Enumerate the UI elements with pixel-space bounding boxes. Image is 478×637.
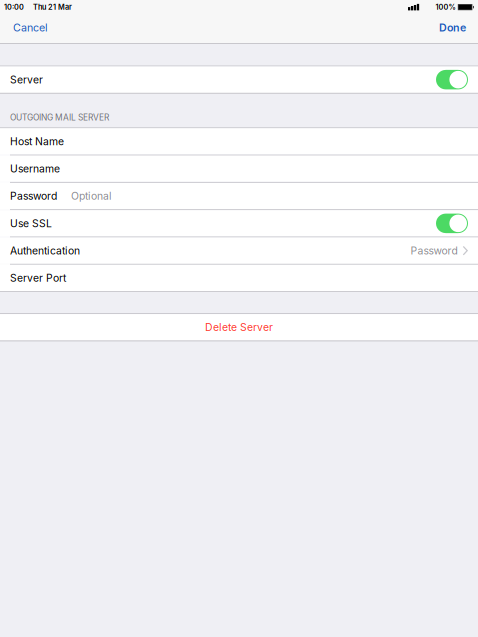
staticText: Server [10,73,43,86]
staticText: 100% [436,3,456,12]
staticText: OUTGOING MAIL SERVER [10,112,109,123]
staticText: Delete Server [205,321,273,334]
staticText: Password [410,244,457,257]
staticText: Password [10,190,57,202]
staticText: Host Name [10,135,64,148]
button[interactable]: Use SSL [0,210,478,236]
staticText: Done [439,21,466,34]
staticText: Cancel [13,21,48,34]
staticText: Authentication [10,244,80,257]
staticText: Server Port [10,272,66,284]
staticText: Use SSL [10,217,52,230]
button[interactable]: Delete Server [0,314,478,340]
staticText: 10:00 [4,3,24,12]
button[interactable]: Server Port [0,265,478,291]
button[interactable]: Server [0,66,478,93]
button[interactable]: Cancel [0,18,56,42]
staticText: Username [10,162,60,175]
staticText: Thu 21 Mar [33,3,72,12]
button[interactable]: Authentication [0,237,478,264]
button[interactable]: Host Name [0,128,478,155]
button[interactable]: Username [0,156,478,182]
staticText: Optional [71,190,112,202]
button[interactable]: Password [0,183,478,209]
button[interactable]: Done [431,18,478,42]
